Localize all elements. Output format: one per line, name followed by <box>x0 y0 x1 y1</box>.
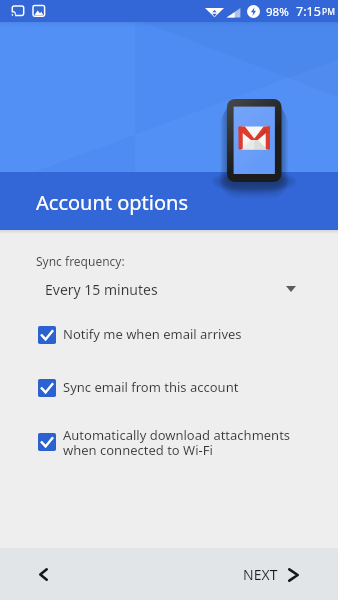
staticText: Automatically download attachments when … <box>63 426 291 459</box>
button[interactable]: Back <box>25 556 61 592</box>
staticText: Sync email from this account <box>63 378 239 396</box>
staticText: 98% <box>266 4 289 20</box>
staticText: NEXT <box>243 565 278 584</box>
button[interactable]: Every 15 minutes <box>0 274 338 304</box>
staticText: 7:15 <box>296 3 321 20</box>
staticText: Notify me when email arrives <box>63 325 242 343</box>
button[interactable]: NEXT <box>233 557 309 592</box>
staticText: PM <box>322 6 335 18</box>
staticText: Account options <box>36 189 189 216</box>
button[interactable]: Automatically download attachments when … <box>0 428 338 465</box>
staticText: Sync frequency: <box>36 253 125 269</box>
button[interactable]: Sync email from this account <box>0 376 338 398</box>
staticText: Every 15 minutes <box>45 280 158 299</box>
button[interactable]: Notify me when email arrives <box>0 323 338 345</box>
